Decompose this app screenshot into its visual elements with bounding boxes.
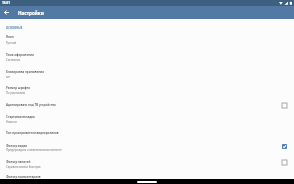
staticText: Стартовая вкладка xyxy=(6,115,35,119)
button[interactable]: Тема оформления xyxy=(0,47,294,64)
staticText: нет xyxy=(6,75,11,79)
staticText: 16:51 xyxy=(2,1,11,5)
staticText: Фильтр видео xyxy=(6,144,28,148)
button[interactable]: Тип проигрывателя видеороликов xyxy=(0,127,294,140)
staticText: Системная xyxy=(6,58,20,62)
staticText: Размер шрифта xyxy=(6,86,30,90)
button[interactable]: Фильтр записей xyxy=(0,156,294,172)
staticText: Фильтр записей xyxy=(6,160,31,164)
button[interactable]: Блокировка приложения xyxy=(0,64,294,81)
button[interactable]: Стартовая вкладка xyxy=(0,111,294,127)
staticText: ОСНОВНЫЕ xyxy=(6,26,23,30)
staticText: Новости xyxy=(6,120,17,124)
staticText: Тема оформления xyxy=(6,53,34,57)
staticText: По умолчанию xyxy=(6,91,26,95)
button[interactable]: Размер шрифта xyxy=(0,81,294,97)
staticText: Предупреждать о нежелательном контенте xyxy=(6,148,62,152)
staticText: Язык xyxy=(6,35,14,39)
button[interactable]: Back xyxy=(0,6,13,19)
staticText: Фильтр комментариев xyxy=(6,175,41,179)
button[interactable]: Фильтр видео xyxy=(0,140,294,156)
button[interactable]: Язык xyxy=(0,31,294,47)
button[interactable]: Фильтр комментариев xyxy=(0,172,294,179)
staticText: Настройки xyxy=(18,10,44,16)
staticText: Тип проигрывателя видеороликов xyxy=(6,131,59,135)
staticText: Русский xyxy=(6,41,17,45)
staticText: Адаптировать под ТВ устройство xyxy=(6,103,56,107)
button[interactable]: Адаптировать под ТВ устройство xyxy=(0,97,294,111)
staticText: Блокировка приложения xyxy=(6,70,45,74)
staticText: Скрывать записи блогеров xyxy=(6,165,41,169)
